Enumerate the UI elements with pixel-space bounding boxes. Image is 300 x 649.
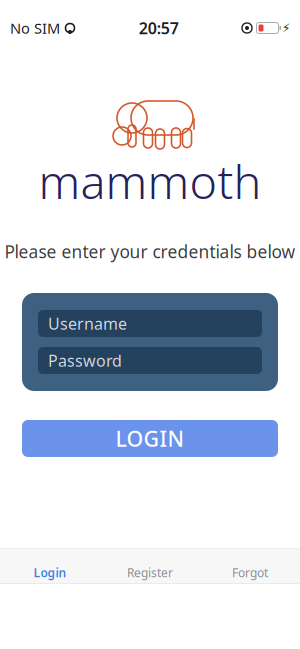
staticText: LOGIN (115, 424, 184, 453)
staticText: Forgot (232, 565, 268, 580)
button[interactable]: Login (0, 548, 100, 583)
staticText: Register (127, 565, 173, 580)
staticText: Login (33, 565, 66, 580)
staticText: ⚡︎ (282, 21, 290, 35)
button[interactable]: Forgot (200, 548, 300, 583)
staticText: Password (48, 350, 122, 371)
button[interactable]: Register (100, 548, 200, 583)
staticText: No SIM (10, 18, 60, 38)
staticText: Please enter your credentials below (4, 240, 295, 263)
staticText: 20:57 (139, 17, 179, 39)
staticText: Username (48, 313, 127, 334)
button[interactable]: LOGIN (22, 420, 278, 457)
staticText: mammoth (38, 150, 261, 212)
button[interactable]: Password (38, 347, 262, 374)
button[interactable]: Username (38, 310, 262, 337)
